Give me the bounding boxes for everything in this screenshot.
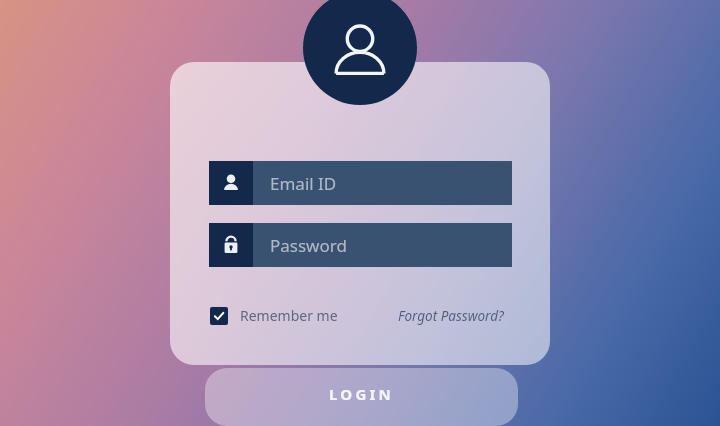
button[interactable]: LOGIN [205,368,518,426]
staticText: Password [270,234,347,257]
staticText: Email ID [270,172,337,195]
staticText: Remember me [240,306,338,325]
staticText: Forgot Password? [398,307,504,325]
button[interactable]: User avatar [303,0,417,105]
staticText: LOGIN [329,384,394,404]
button[interactable]: Forgot Password? [392,306,504,326]
button[interactable]: Password [209,223,512,267]
button[interactable]: Email ID [209,161,512,205]
button[interactable]: Remember me [210,306,338,325]
